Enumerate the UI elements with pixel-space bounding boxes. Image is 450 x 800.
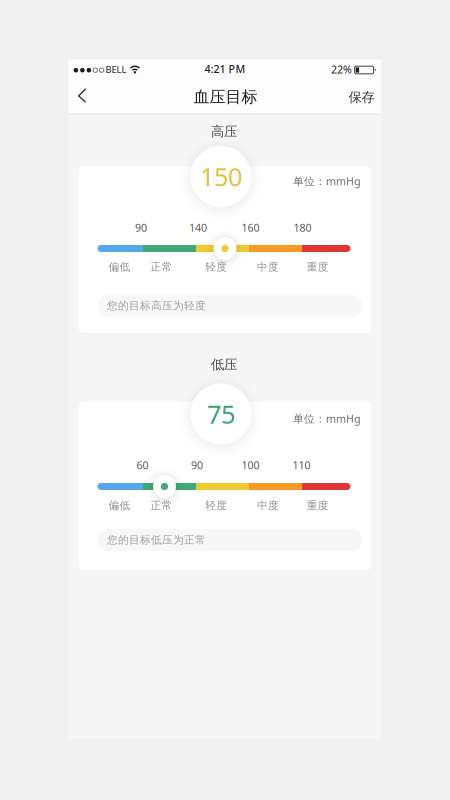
- staticText: 110: [292, 458, 310, 472]
- staticText: BELL: [105, 63, 126, 76]
- staticText: 轻度: [205, 260, 227, 273]
- staticText: 偏低: [109, 260, 131, 273]
- staticText: 60: [136, 458, 148, 472]
- staticText: 75: [207, 397, 235, 431]
- staticText: 保存: [348, 89, 374, 105]
- staticText: 4:21 PM: [204, 62, 245, 76]
- staticText: 低压: [211, 356, 237, 373]
- staticText: 高压: [211, 123, 237, 140]
- staticText: 90: [135, 220, 147, 235]
- staticText: 偏低: [109, 499, 131, 512]
- staticText: 180: [293, 220, 311, 235]
- staticText: 160: [241, 220, 259, 235]
- staticText: 血压目标: [193, 87, 257, 107]
- staticText: 140: [189, 220, 207, 235]
- staticText: 轻度: [205, 499, 227, 512]
- button[interactable]: Back: [77, 88, 87, 104]
- button[interactable]: 保存: [348, 89, 374, 105]
- staticText: 单位：mmHg: [293, 411, 361, 426]
- button[interactable]: Adjust systolic target: [213, 237, 236, 260]
- staticText: 90: [191, 458, 203, 472]
- staticText: 100: [241, 458, 259, 472]
- staticText: 150: [200, 160, 242, 193]
- staticText: 正常: [150, 499, 172, 512]
- staticText: 您的目标高压为轻度: [107, 299, 206, 312]
- staticText: 您的目标低压为正常: [107, 533, 206, 546]
- staticText: 单位：mmHg: [293, 174, 361, 188]
- staticText: 正常: [150, 260, 172, 273]
- staticText: 中度: [257, 499, 279, 512]
- staticText: 中度: [257, 260, 279, 273]
- staticText: 重度: [307, 499, 329, 512]
- staticText: 22%: [331, 62, 352, 76]
- staticText: 重度: [307, 260, 329, 273]
- button[interactable]: Adjust diastolic target: [153, 475, 176, 498]
